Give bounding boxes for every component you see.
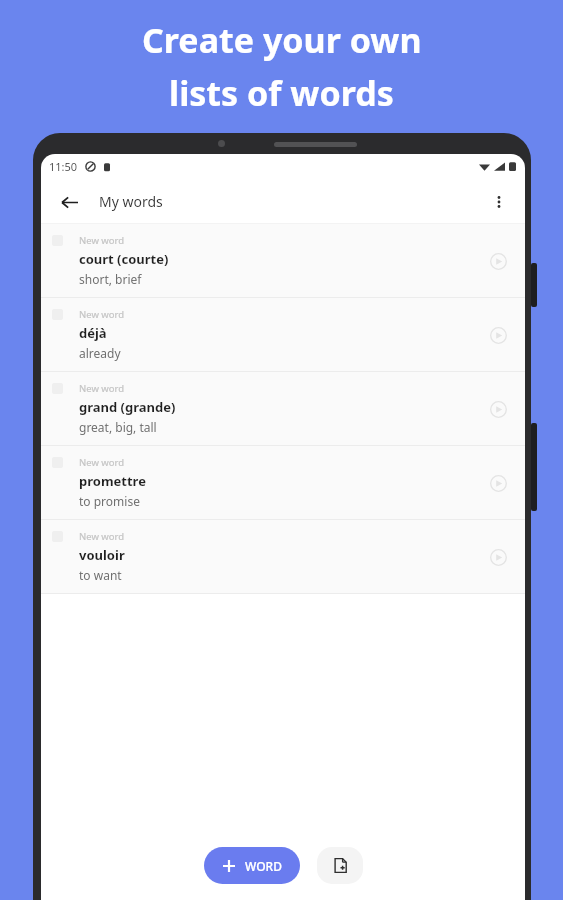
button[interactable]: New word — [41, 372, 525, 445]
staticText: short, brief — [79, 271, 142, 287]
staticText: great, big, tall — [79, 419, 157, 435]
staticText: grand (grande) — [79, 398, 176, 416]
staticText: New word — [79, 234, 125, 247]
staticText: vouloir — [79, 546, 125, 564]
button[interactable]: Import from file — [317, 847, 363, 884]
staticText: promettre — [79, 472, 146, 490]
staticText: My words — [99, 192, 163, 211]
button[interactable]: WORD — [204, 847, 300, 884]
staticText: WORD — [245, 858, 282, 874]
button[interactable]: Play pronunciation — [484, 247, 512, 275]
staticText: New word — [79, 382, 125, 395]
staticText: déjà — [79, 324, 107, 342]
button[interactable]: Play pronunciation — [484, 395, 512, 423]
staticText: to promise — [79, 493, 140, 509]
staticText: already — [79, 345, 121, 361]
staticText: New word — [79, 530, 125, 543]
button[interactable]: More options — [483, 186, 515, 218]
button[interactable]: New word — [41, 520, 525, 593]
button[interactable]: Play pronunciation — [484, 543, 512, 571]
button[interactable]: New word — [41, 298, 525, 371]
staticText: New word — [79, 456, 125, 469]
staticText: 11:50 — [49, 159, 78, 174]
staticText: to want — [79, 567, 122, 583]
staticText: New word — [79, 308, 125, 321]
button[interactable]: Play pronunciation — [484, 321, 512, 349]
button[interactable]: New word — [41, 224, 525, 297]
button[interactable]: Play pronunciation — [484, 469, 512, 497]
staticText: lists of words — [169, 70, 394, 116]
staticText: court (courte) — [79, 250, 169, 268]
staticText: Create your own — [142, 17, 422, 63]
button[interactable]: New word — [41, 446, 525, 519]
button[interactable]: Back — [53, 186, 85, 218]
